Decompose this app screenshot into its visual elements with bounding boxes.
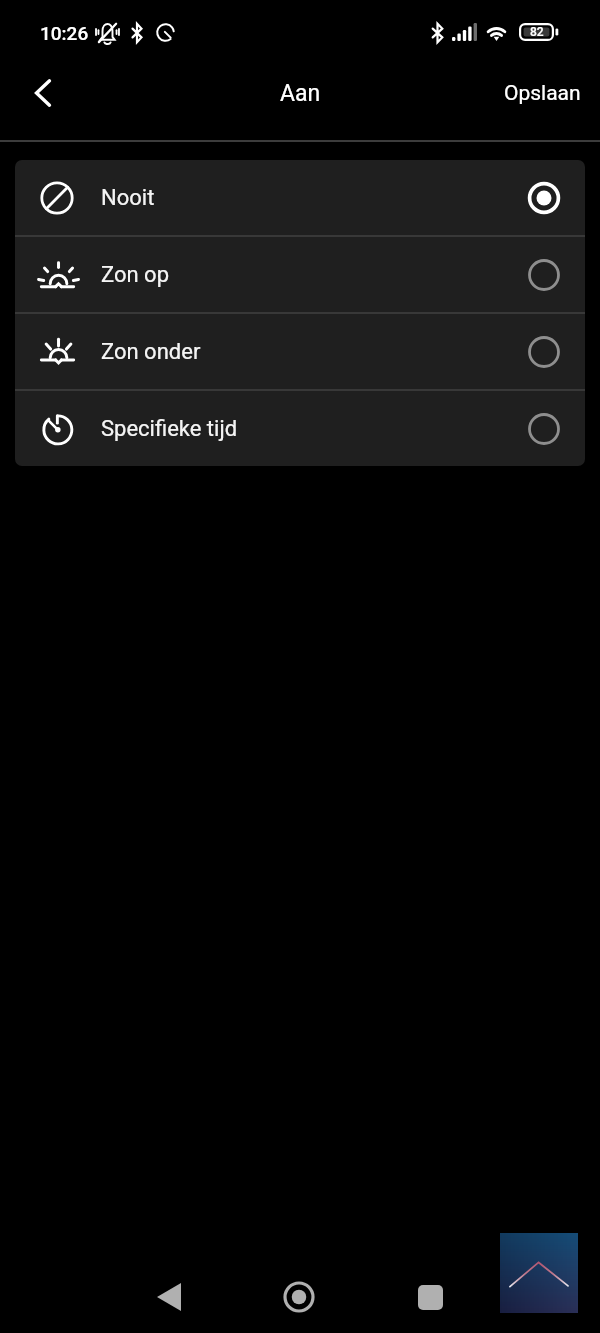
button[interactable]: Opslaan	[488, 69, 597, 118]
button[interactable]: Back	[19, 69, 67, 117]
button[interactable]: Zon op	[15, 237, 585, 312]
button[interactable]: Specifieke tijd	[15, 391, 585, 466]
button[interactable]: Home	[273, 1271, 325, 1323]
staticText: Aan	[280, 80, 321, 107]
staticText: 10:26	[40, 22, 89, 44]
staticText: 82	[530, 25, 544, 39]
staticText: Specifieke tijd	[101, 416, 238, 442]
staticText: Nooit	[101, 185, 155, 211]
staticText: Zon op	[101, 262, 170, 288]
button[interactable]: Nooit	[15, 160, 585, 235]
button[interactable]: Back	[143, 1271, 195, 1323]
staticText: Zon onder	[101, 339, 201, 365]
button[interactable]: Recent apps	[404, 1271, 456, 1323]
staticText: Opslaan	[504, 81, 581, 106]
button[interactable]: Zon onder	[15, 314, 585, 389]
